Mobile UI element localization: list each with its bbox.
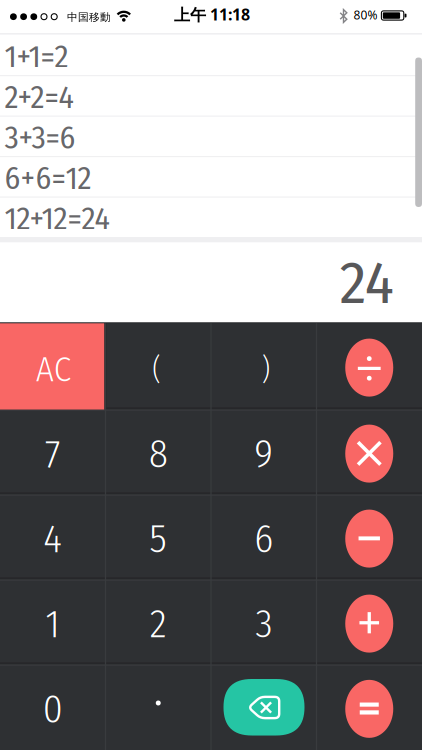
staticText: 1 xyxy=(45,600,60,648)
staticText: ) xyxy=(262,352,270,387)
staticText: 9 xyxy=(254,430,273,478)
staticText: 6 xyxy=(254,515,273,563)
staticText: 2 xyxy=(150,600,167,648)
staticText: 8 xyxy=(149,430,168,478)
staticText: 上午 11:18 xyxy=(174,4,250,25)
staticText: 80% xyxy=(353,7,377,23)
staticText: 5 xyxy=(149,515,167,563)
staticText: 7 xyxy=(45,430,61,478)
staticText: 24 xyxy=(340,247,394,319)
staticText: 6+6=12 xyxy=(4,159,91,197)
staticText: 中国移動 xyxy=(67,11,111,24)
staticText: AC xyxy=(36,348,71,391)
staticText: ( xyxy=(152,352,160,387)
staticText: 2+2=4 xyxy=(4,78,73,116)
staticText: 12+12=24 xyxy=(4,200,109,238)
staticText: 3+3=6 xyxy=(4,119,75,157)
staticText: 4 xyxy=(43,515,62,563)
staticText: 0 xyxy=(43,685,63,733)
staticText: 3 xyxy=(255,600,272,648)
staticText: 1+1=2 xyxy=(4,38,68,76)
